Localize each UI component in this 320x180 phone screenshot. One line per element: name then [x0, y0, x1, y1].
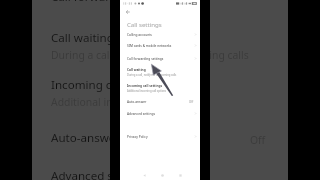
button[interactable]: Calling accounts	[120, 33, 200, 37]
button[interactable]: Call forwarding settings	[120, 57, 200, 61]
staticText: Call waiting	[127, 68, 146, 72]
button[interactable]: Call waiting	[32, 30, 288, 62]
staticText: During a call, notify me of incoming cal…	[51, 48, 249, 62]
button[interactable]: Call forwarding	[32, 0, 288, 7]
button[interactable]: Auto-answer	[120, 100, 200, 104]
button[interactable]: Home	[158, 168, 166, 180]
staticText: SIM cards & mobile networks	[127, 44, 172, 48]
button[interactable]: Call waiting	[120, 68, 200, 77]
staticText: Auto-answer	[51, 130, 121, 146]
button[interactable]: Incoming call settings	[120, 84, 200, 93]
staticText: Additional incoming call options	[127, 89, 167, 93]
staticText: Privacy Policy	[127, 135, 148, 139]
button[interactable]: Recents	[176, 168, 184, 180]
staticText: During a call, notify me of incoming cal…	[127, 73, 177, 77]
staticText: Advanced settings	[127, 112, 155, 116]
button[interactable]: Back	[140, 168, 148, 180]
staticText: Off	[250, 133, 266, 147]
button[interactable]: Back	[124, 8, 132, 16]
button[interactable]: SIM cards & mobile networks	[120, 44, 200, 48]
staticText: Incoming call settings	[51, 77, 171, 93]
staticText: Additional incoming call options	[51, 95, 208, 109]
staticText: Incoming call settings	[127, 84, 163, 88]
button[interactable]: Advanced settings	[32, 168, 288, 180]
staticText: Call forwarding	[51, 0, 135, 5]
button[interactable]: Incoming call settings	[32, 77, 288, 109]
staticText: Call forwarding settings	[127, 57, 164, 61]
button[interactable]: Privacy Policy	[120, 135, 200, 139]
staticText: Advanced settings	[51, 168, 151, 180]
staticText: Auto-answer	[127, 100, 147, 104]
staticText: Call waiting	[51, 30, 114, 46]
staticText: Call settings	[127, 20, 162, 28]
button[interactable]: Auto-answer	[32, 130, 288, 148]
staticText: Off	[189, 100, 194, 104]
staticText: Calling accounts	[127, 33, 152, 37]
button[interactable]: Advanced settings	[120, 112, 200, 116]
